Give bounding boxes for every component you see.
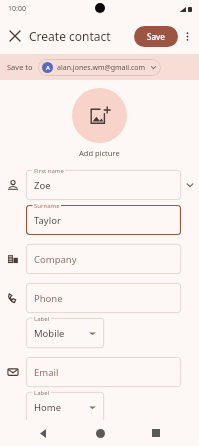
staticText: Save to	[7, 62, 33, 72]
staticText: Company	[34, 253, 173, 266]
staticText: Add picture	[79, 148, 120, 158]
button[interactable]: Recent apps	[143, 420, 169, 446]
button[interactable]: Home	[87, 420, 113, 446]
staticText: alan.jones.wm@gmail.com	[57, 63, 146, 73]
button[interactable]: Save	[134, 26, 178, 47]
staticText: Save	[147, 31, 165, 42]
staticText: 10:00	[8, 4, 26, 14]
button[interactable]: Home	[26, 392, 104, 422]
button[interactable]: A	[38, 59, 161, 76]
button[interactable]: Email	[26, 357, 181, 387]
button[interactable]: Taylor	[26, 205, 181, 235]
staticText: Create contact	[29, 28, 111, 44]
staticText: First name	[34, 167, 64, 175]
staticText: Zoe	[34, 179, 173, 192]
button[interactable]: Zoe	[26, 170, 181, 200]
staticText: Mobile	[34, 327, 89, 340]
button[interactable]: Company	[26, 244, 181, 274]
staticText: Email	[34, 366, 173, 379]
button[interactable]: Add picture	[72, 88, 127, 143]
staticText: Surname	[34, 202, 60, 210]
button[interactable]: Back	[30, 420, 56, 446]
staticText: Label	[34, 315, 50, 323]
staticText: Label	[34, 389, 50, 397]
staticText: Home	[34, 401, 89, 414]
button[interactable]: Close	[4, 25, 26, 47]
button[interactable]: More options	[177, 26, 197, 46]
button[interactable]: Expand name fields	[181, 176, 199, 194]
staticText: Taylor	[34, 214, 173, 227]
button[interactable]: Phone	[26, 283, 181, 313]
staticText: Phone	[34, 292, 173, 305]
button[interactable]: Mobile	[26, 318, 104, 348]
staticText: A	[46, 64, 50, 72]
